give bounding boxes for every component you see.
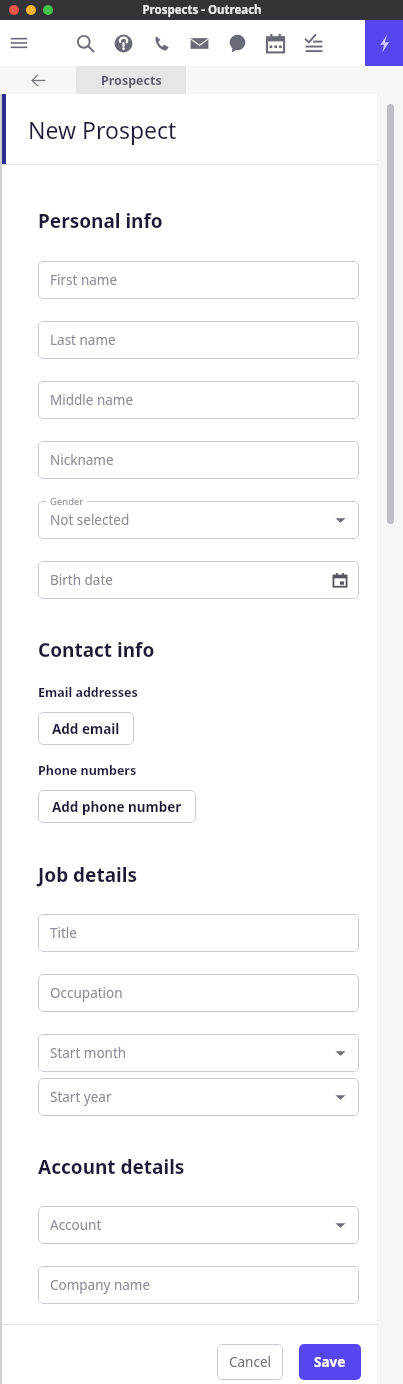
staticText: Middle name (50, 391, 134, 409)
staticText: First name (50, 271, 118, 289)
button[interactable]: Help (104, 20, 142, 66)
button[interactable]: Calls (142, 20, 180, 66)
button[interactable]: Account (38, 1206, 359, 1244)
staticText: Phone numbers (38, 762, 137, 779)
button[interactable]: Back (0, 66, 76, 94)
button[interactable]: Calendar (256, 20, 294, 66)
staticText: Personal info (38, 208, 163, 234)
staticText: Add phone number (52, 798, 182, 816)
staticText: Account details (38, 1154, 185, 1180)
staticText: Cancel (229, 1353, 272, 1371)
button[interactable]: Quick actions (365, 20, 403, 66)
staticText: Add email (52, 720, 120, 738)
button[interactable]: Start year (38, 1078, 359, 1116)
staticText: Job details (38, 862, 137, 888)
staticText: Last name (50, 331, 116, 349)
staticText: Start month (50, 1044, 127, 1062)
button[interactable]: Menu (0, 20, 38, 66)
button[interactable]: Search (66, 20, 104, 66)
button[interactable]: Start month (38, 1034, 359, 1072)
button[interactable]: Nickname (38, 441, 359, 479)
staticText: Prospects (101, 72, 162, 89)
button[interactable]: Prospects (76, 66, 186, 94)
button[interactable]: Last name (38, 321, 359, 359)
staticText: Save (314, 1353, 346, 1371)
staticText: New Prospect (28, 114, 177, 145)
staticText: Title (50, 924, 77, 942)
staticText: Occupation (50, 984, 123, 1002)
button[interactable]: Tasks (294, 20, 332, 66)
staticText: Email addresses (38, 684, 138, 701)
staticText: Start year (50, 1088, 112, 1106)
staticText: Not selected (50, 511, 130, 529)
staticText: Prospects - Outreach (142, 2, 262, 18)
button[interactable]: Save (299, 1344, 361, 1380)
button[interactable]: Middle name (38, 381, 359, 419)
button[interactable]: Not selected (38, 501, 359, 539)
staticText: Nickname (50, 451, 114, 469)
staticText: Birth date (50, 571, 113, 589)
button[interactable]: Add phone number (38, 790, 196, 823)
button[interactable]: First name (38, 261, 359, 299)
staticText: Company name (50, 1276, 151, 1294)
button[interactable]: Occupation (38, 974, 359, 1012)
button[interactable]: Cancel (217, 1344, 283, 1380)
button[interactable]: Add email (38, 712, 134, 745)
staticText: Contact info (38, 637, 155, 663)
staticText: Account (50, 1216, 102, 1234)
staticText: Gender (50, 495, 84, 508)
button[interactable]: Company name (38, 1266, 359, 1304)
button[interactable]: Birth date (38, 561, 359, 599)
button[interactable]: Email (180, 20, 218, 66)
button[interactable]: Chat (218, 20, 256, 66)
button[interactable]: Title (38, 914, 359, 952)
